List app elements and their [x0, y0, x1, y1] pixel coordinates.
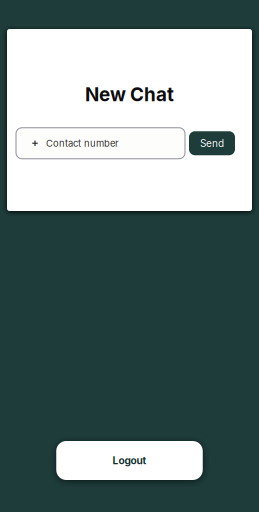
button[interactable]: Send — [189, 131, 235, 155]
staticText: Logout — [112, 454, 146, 467]
button[interactable]: Add contact number — [16, 128, 185, 159]
staticText: Contact number — [46, 138, 119, 149]
button[interactable]: Logout — [56, 441, 203, 480]
staticText: Send — [200, 137, 224, 149]
staticText: New Chat — [85, 83, 174, 106]
